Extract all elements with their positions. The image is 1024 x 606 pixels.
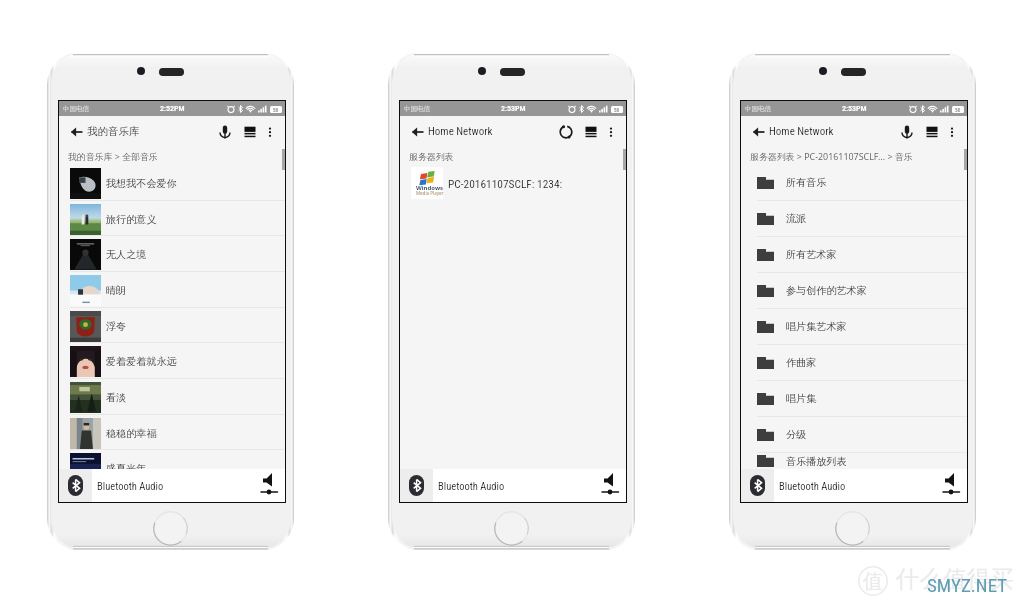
staticText: 浮夸 xyxy=(106,320,127,333)
staticText: SMYZ.NET xyxy=(927,574,1008,596)
staticText: 中国电信 xyxy=(63,105,89,113)
staticText: 唱片集 xyxy=(786,392,817,405)
button[interactable]: 所有音乐 xyxy=(741,165,967,200)
staticText: 我的音乐库 > 全部音乐 xyxy=(68,150,158,162)
button[interactable]: Windows xyxy=(400,165,626,201)
staticText: 看淡 xyxy=(106,391,127,404)
staticText: 作曲家 xyxy=(786,356,817,369)
staticText: 参与创作的艺术家 xyxy=(786,284,867,297)
staticText: Bluetooth Audio xyxy=(779,480,846,492)
staticText: Windows xyxy=(416,184,444,192)
staticText: Home Network xyxy=(769,125,834,138)
staticText: PC-20161107SCLF: 1234: xyxy=(448,177,563,190)
staticText: 无人之境 xyxy=(106,248,147,261)
staticText: Home Network xyxy=(428,125,493,138)
button[interactable]: 所有艺术家 xyxy=(741,237,967,272)
staticText: Bluetooth Audio xyxy=(438,480,505,492)
button[interactable]: More options xyxy=(263,125,277,139)
button[interactable]: Voice search xyxy=(216,123,234,141)
staticText: 流派 xyxy=(786,212,807,225)
button[interactable]: Display options xyxy=(582,123,600,141)
button[interactable]: 唱片集 xyxy=(741,381,967,416)
button[interactable]: 无人之境 xyxy=(59,236,285,272)
button[interactable]: 音乐播放列表 xyxy=(741,453,967,469)
staticText: 中国电信 xyxy=(745,105,771,113)
button[interactable]: 爱着爱着就永远 xyxy=(59,343,285,379)
button[interactable]: Back xyxy=(409,123,427,141)
button[interactable]: Bluetooth Audio xyxy=(741,469,967,502)
button[interactable]: Refresh xyxy=(557,123,575,141)
staticText: Media Player xyxy=(416,190,444,196)
staticText: 58 xyxy=(955,107,961,113)
staticText: 我的音乐库 xyxy=(87,125,140,138)
staticText: 2:52PM xyxy=(160,104,185,113)
staticText: 值 xyxy=(863,569,883,594)
staticText: 唱片集艺术家 xyxy=(786,320,847,333)
button[interactable]: 分级 xyxy=(741,417,967,452)
button[interactable]: 浮夸 xyxy=(59,308,285,344)
button[interactable]: Display options xyxy=(241,123,259,141)
button[interactable]: Bluetooth Audio xyxy=(400,469,626,502)
button[interactable]: Bluetooth Audio xyxy=(59,469,285,502)
button[interactable]: Voice search xyxy=(898,123,916,141)
button[interactable]: 作曲家 xyxy=(741,345,967,380)
staticText: 晴朗 xyxy=(106,284,127,297)
staticText: 服务器列表 > PC-20161107SCLF... > 音乐 xyxy=(750,150,913,162)
button[interactable]: 唱片集艺术家 xyxy=(741,309,967,344)
button[interactable]: 我想我不会爱你 xyxy=(59,165,285,201)
button[interactable]: Volume xyxy=(253,473,283,499)
button[interactable]: 看淡 xyxy=(59,379,285,415)
staticText: 音乐播放列表 xyxy=(786,455,847,468)
staticText: 分级 xyxy=(786,428,807,441)
button[interactable]: 晴朗 xyxy=(59,272,285,308)
staticText: Bluetooth Audio xyxy=(97,480,164,492)
staticText: 我想我不会爱你 xyxy=(106,177,177,190)
staticText: 58 xyxy=(614,107,620,113)
button[interactable]: Volume xyxy=(935,473,965,499)
button[interactable]: Back xyxy=(68,123,86,141)
staticText: 什么值得买 xyxy=(896,564,1014,594)
button[interactable]: 流派 xyxy=(741,201,967,236)
button[interactable]: More options xyxy=(945,125,959,139)
staticText: 旅行的意义 xyxy=(106,213,157,226)
staticText: 58 xyxy=(273,107,279,113)
button[interactable]: Display options xyxy=(923,123,941,141)
staticText: 爱着爱着就永远 xyxy=(106,355,177,368)
staticText: 中国电信 xyxy=(404,105,430,113)
button[interactable]: Back xyxy=(750,123,768,141)
staticText: 盛夏光年 xyxy=(106,462,147,475)
button[interactable]: 盛夏光年 xyxy=(59,450,285,486)
button[interactable]: 参与创作的艺术家 xyxy=(741,273,967,308)
button[interactable]: 旅行的意义 xyxy=(59,201,285,237)
staticText: 稳稳的幸福 xyxy=(106,427,157,440)
button[interactable]: Volume xyxy=(594,473,624,499)
staticText: 2:53PM xyxy=(501,104,526,113)
button[interactable]: 稳稳的幸福 xyxy=(59,415,285,451)
staticText: 所有艺术家 xyxy=(786,248,837,261)
staticText: 服务器列表 xyxy=(409,151,454,162)
staticText: 2:53PM xyxy=(842,104,867,113)
staticText: 所有音乐 xyxy=(786,176,827,189)
button[interactable]: More options xyxy=(604,125,618,139)
